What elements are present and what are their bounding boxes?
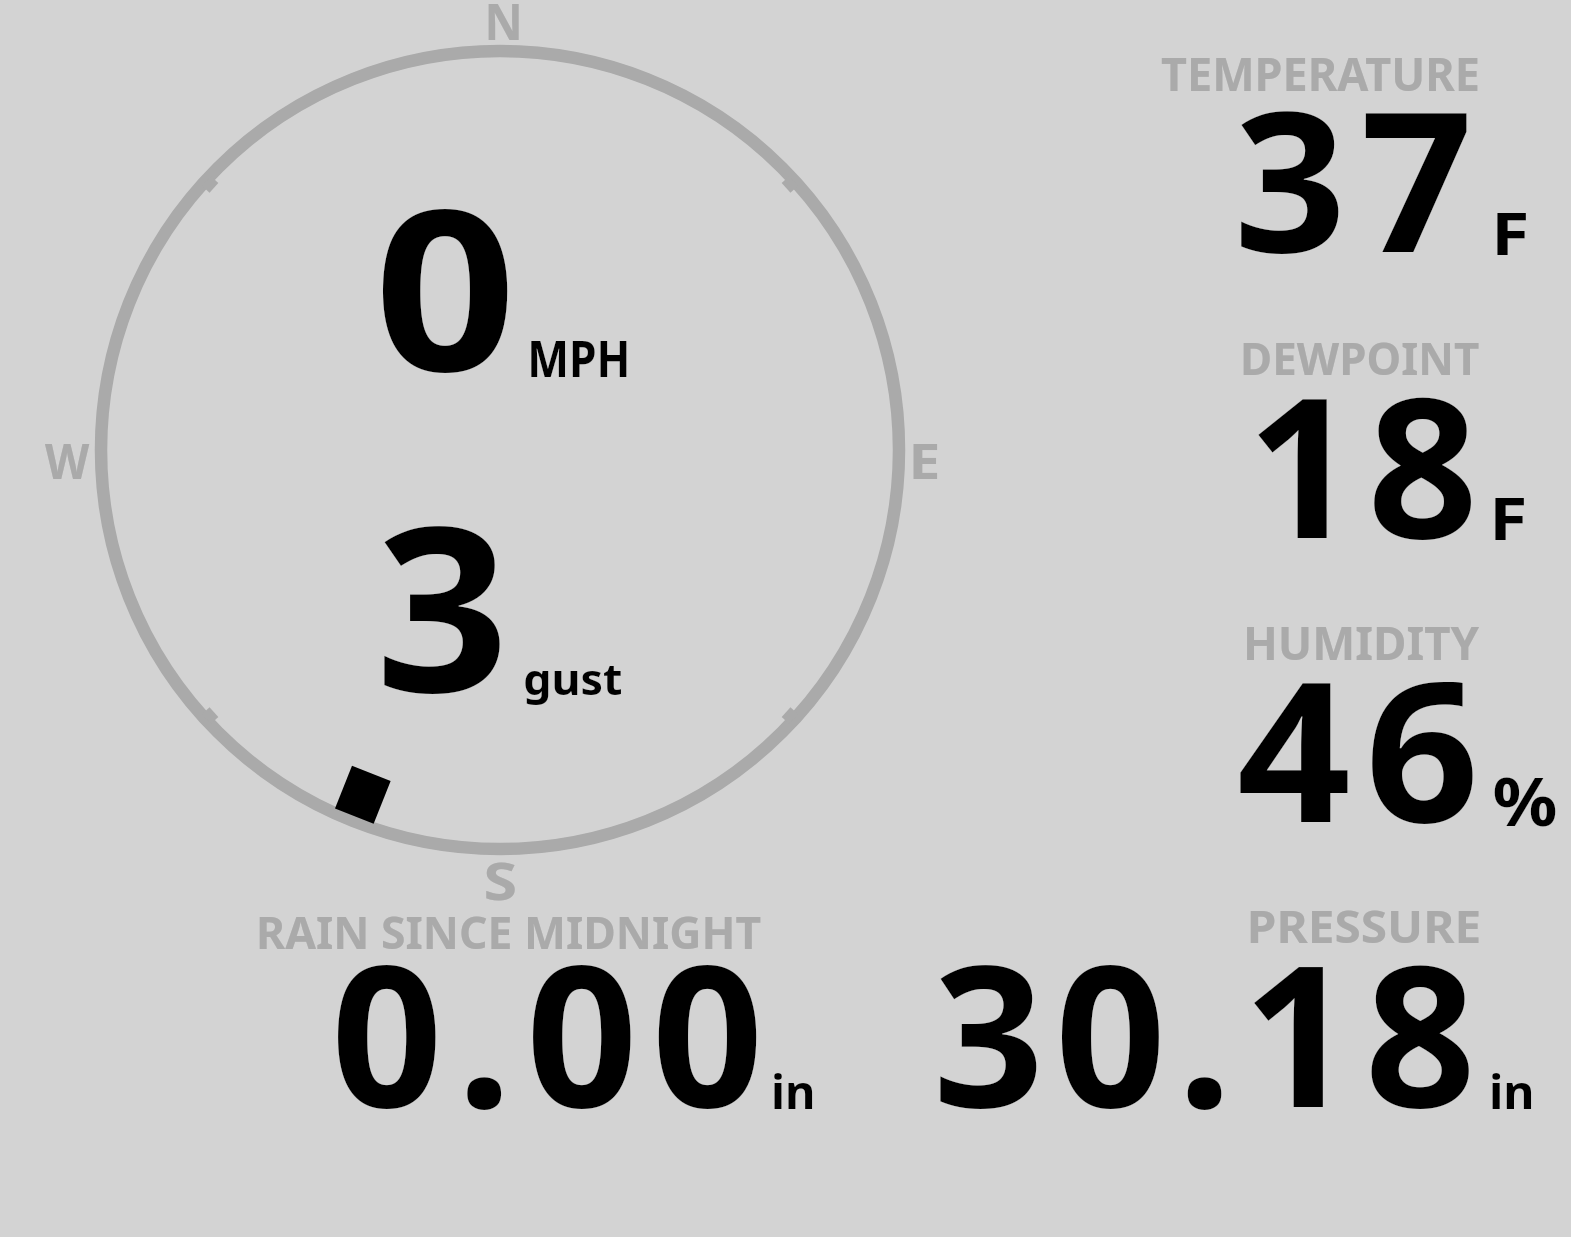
button[interactable]: Pressure 30.18 inches [920,900,1560,1122]
button[interactable]: Humidity 46 percent [1140,610,1571,845]
button[interactable]: Temperature 37 degrees Fahrenheit [1140,40,1571,270]
button[interactable]: Wind 0 miles per hour, gusting 3, from s… [30,0,970,900]
button[interactable]: Dewpoint 18 degrees Fahrenheit [1140,325,1571,555]
button[interactable]: Rain since midnight 0.00 inches [240,900,840,1122]
